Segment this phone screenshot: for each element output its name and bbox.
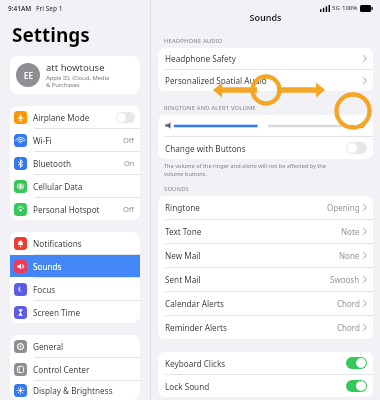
staticText: Notifications bbox=[33, 238, 82, 249]
other: Open bbox=[363, 252, 367, 259]
staticText: 100% bbox=[342, 4, 358, 12]
staticText: Cellular Data bbox=[33, 181, 83, 192]
staticText: Personal Hotspot bbox=[33, 204, 100, 215]
button[interactable]: Change with Buttons bbox=[158, 137, 373, 159]
staticText: Control Center bbox=[33, 364, 90, 375]
other: Open bbox=[363, 276, 367, 283]
button[interactable]: Ringtone and alert volume bbox=[175, 120, 354, 132]
staticText: Personalized Spatial Audio bbox=[165, 75, 267, 86]
button[interactable]: General bbox=[10, 335, 140, 357]
staticText: New Mail bbox=[165, 250, 201, 261]
button[interactable]: Keyboard Clicks bbox=[158, 352, 373, 374]
staticText: None bbox=[339, 250, 360, 261]
staticText: Apple ID, iCloud, Media & Purchases bbox=[46, 74, 110, 89]
button[interactable]: Reminder Alerts bbox=[158, 316, 373, 339]
button[interactable]: Text Tone bbox=[158, 220, 373, 243]
staticText: Opening bbox=[327, 202, 360, 213]
other: Open bbox=[363, 204, 367, 211]
staticText: att howtouse bbox=[46, 61, 105, 74]
staticText: Chord bbox=[337, 322, 360, 333]
staticText: Note bbox=[341, 226, 360, 237]
staticText: 5G bbox=[332, 4, 340, 12]
button[interactable]: Personalized Spatial Audio bbox=[158, 70, 373, 91]
button[interactable]: Sent Mail bbox=[158, 268, 373, 291]
staticText: Ringtone bbox=[165, 202, 200, 213]
staticText: On bbox=[124, 158, 135, 168]
button[interactable]: Control Center bbox=[10, 358, 140, 380]
staticText: General bbox=[33, 341, 64, 352]
button[interactable]: Wi-Fi bbox=[10, 129, 140, 151]
staticText: Settings bbox=[12, 22, 90, 48]
button[interactable]: Display & Brightness bbox=[10, 381, 140, 400]
staticText: Screen Time bbox=[33, 307, 81, 318]
staticText: Calendar Alerts bbox=[165, 298, 224, 309]
staticText: RINGTONE AND ALERT VOLUME bbox=[164, 104, 256, 112]
staticText: Headphone Safety bbox=[165, 53, 236, 64]
other: Open bbox=[363, 300, 367, 307]
staticText: Off bbox=[123, 204, 135, 214]
button[interactable]: Switch on bbox=[346, 357, 367, 369]
staticText: Keyboard Clicks bbox=[165, 358, 226, 369]
button[interactable]: Switch off bbox=[116, 112, 135, 123]
staticText: Airplane Mode bbox=[33, 112, 90, 123]
staticText: Off bbox=[123, 135, 135, 145]
staticText: Bluetooth bbox=[33, 158, 71, 169]
staticText: The volume of the ringer and alerts will… bbox=[164, 162, 326, 178]
button[interactable]: Cellular Data bbox=[10, 175, 140, 197]
staticText: Sent Mail bbox=[165, 274, 201, 285]
button[interactable]: Sounds bbox=[10, 255, 140, 277]
other: Open bbox=[363, 324, 367, 331]
staticText: Chord bbox=[337, 298, 360, 309]
button[interactable]: Switch off bbox=[346, 142, 367, 154]
staticText: Sounds bbox=[33, 261, 62, 272]
other: Open bbox=[363, 228, 367, 235]
button[interactable]: Switch on bbox=[346, 380, 367, 392]
staticText: 9:41AM bbox=[8, 4, 32, 13]
staticText: Lock Sound bbox=[165, 381, 210, 392]
staticText: Swoosh bbox=[330, 274, 360, 285]
staticText: Sounds bbox=[151, 11, 380, 23]
staticText: Text Tone bbox=[165, 226, 202, 237]
button[interactable]: Screen Time bbox=[10, 301, 140, 323]
staticText: Reminder Alerts bbox=[165, 322, 227, 333]
staticText: EE bbox=[24, 70, 33, 81]
button[interactable]: Lock Sound bbox=[158, 375, 373, 397]
other: Open bbox=[363, 77, 367, 84]
staticText: Change with Buttons bbox=[165, 143, 246, 154]
button[interactable]: Focus bbox=[10, 278, 140, 300]
other: Open bbox=[363, 55, 367, 62]
staticText: Focus bbox=[33, 284, 56, 295]
button[interactable]: Headphone Safety bbox=[158, 48, 373, 69]
staticText: Wi-Fi bbox=[33, 135, 52, 146]
staticText: HEADPHONE AUDIO bbox=[164, 37, 223, 45]
button[interactable]: Notifications bbox=[10, 232, 140, 254]
button[interactable]: Bluetooth bbox=[10, 152, 140, 174]
button[interactable]: Airplane Mode bbox=[10, 106, 140, 128]
button[interactable]: New Mail bbox=[158, 244, 373, 267]
staticText: Fri Sep 1 bbox=[36, 4, 63, 13]
staticText: Display & Brightness bbox=[33, 385, 113, 396]
button[interactable]: EE bbox=[10, 56, 140, 94]
button[interactable]: Personal Hotspot bbox=[10, 198, 140, 220]
staticText: SOUNDS bbox=[164, 185, 189, 193]
button[interactable]: Ringtone bbox=[158, 196, 373, 219]
button[interactable]: Calendar Alerts bbox=[158, 292, 373, 315]
